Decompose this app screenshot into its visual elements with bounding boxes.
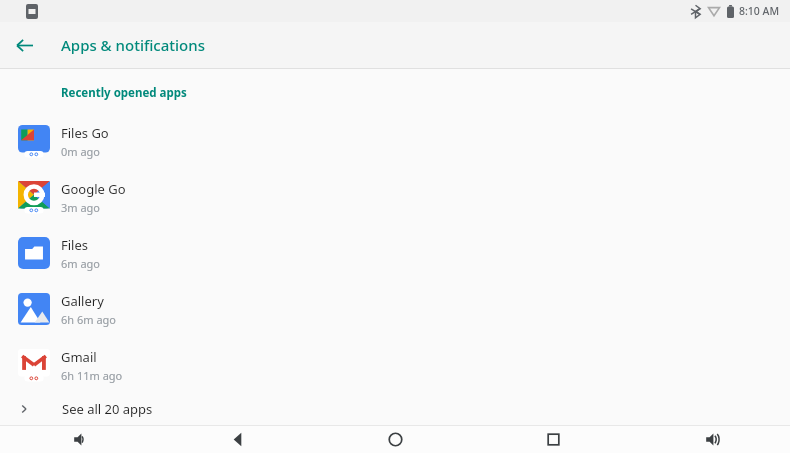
button[interactable]: Files <box>0 225 790 281</box>
staticText: 3m ago <box>61 200 101 215</box>
button[interactable]: Gallery <box>0 281 790 337</box>
staticText: 8:10 AM <box>739 4 780 18</box>
button[interactable]: See all 20 apps <box>0 393 790 425</box>
staticText: Google Go <box>61 180 126 198</box>
staticText: Files Go <box>61 124 109 142</box>
button[interactable]: Recents <box>474 426 632 453</box>
staticText: 6m ago <box>61 256 101 271</box>
staticText: 6h 11m ago <box>61 368 123 383</box>
button[interactable]: Files Go <box>0 113 790 169</box>
staticText: Gallery <box>61 292 104 310</box>
staticText: 6h 6m ago <box>61 312 116 327</box>
button[interactable]: Back <box>158 426 316 453</box>
button[interactable]: Volume up <box>632 426 790 453</box>
button[interactable]: Home <box>316 426 474 453</box>
staticText: Apps & notifications <box>61 35 205 55</box>
staticText: See all 20 apps <box>62 400 153 418</box>
button[interactable]: Volume down <box>0 426 158 453</box>
staticText: 0m ago <box>61 144 101 159</box>
staticText: Files <box>61 236 89 254</box>
staticText: Recently opened apps <box>61 85 187 101</box>
button[interactable]: Back <box>10 31 38 59</box>
button[interactable]: Gmail <box>0 337 790 393</box>
button[interactable]: Google Go <box>0 169 790 225</box>
staticText: Gmail <box>61 348 97 366</box>
